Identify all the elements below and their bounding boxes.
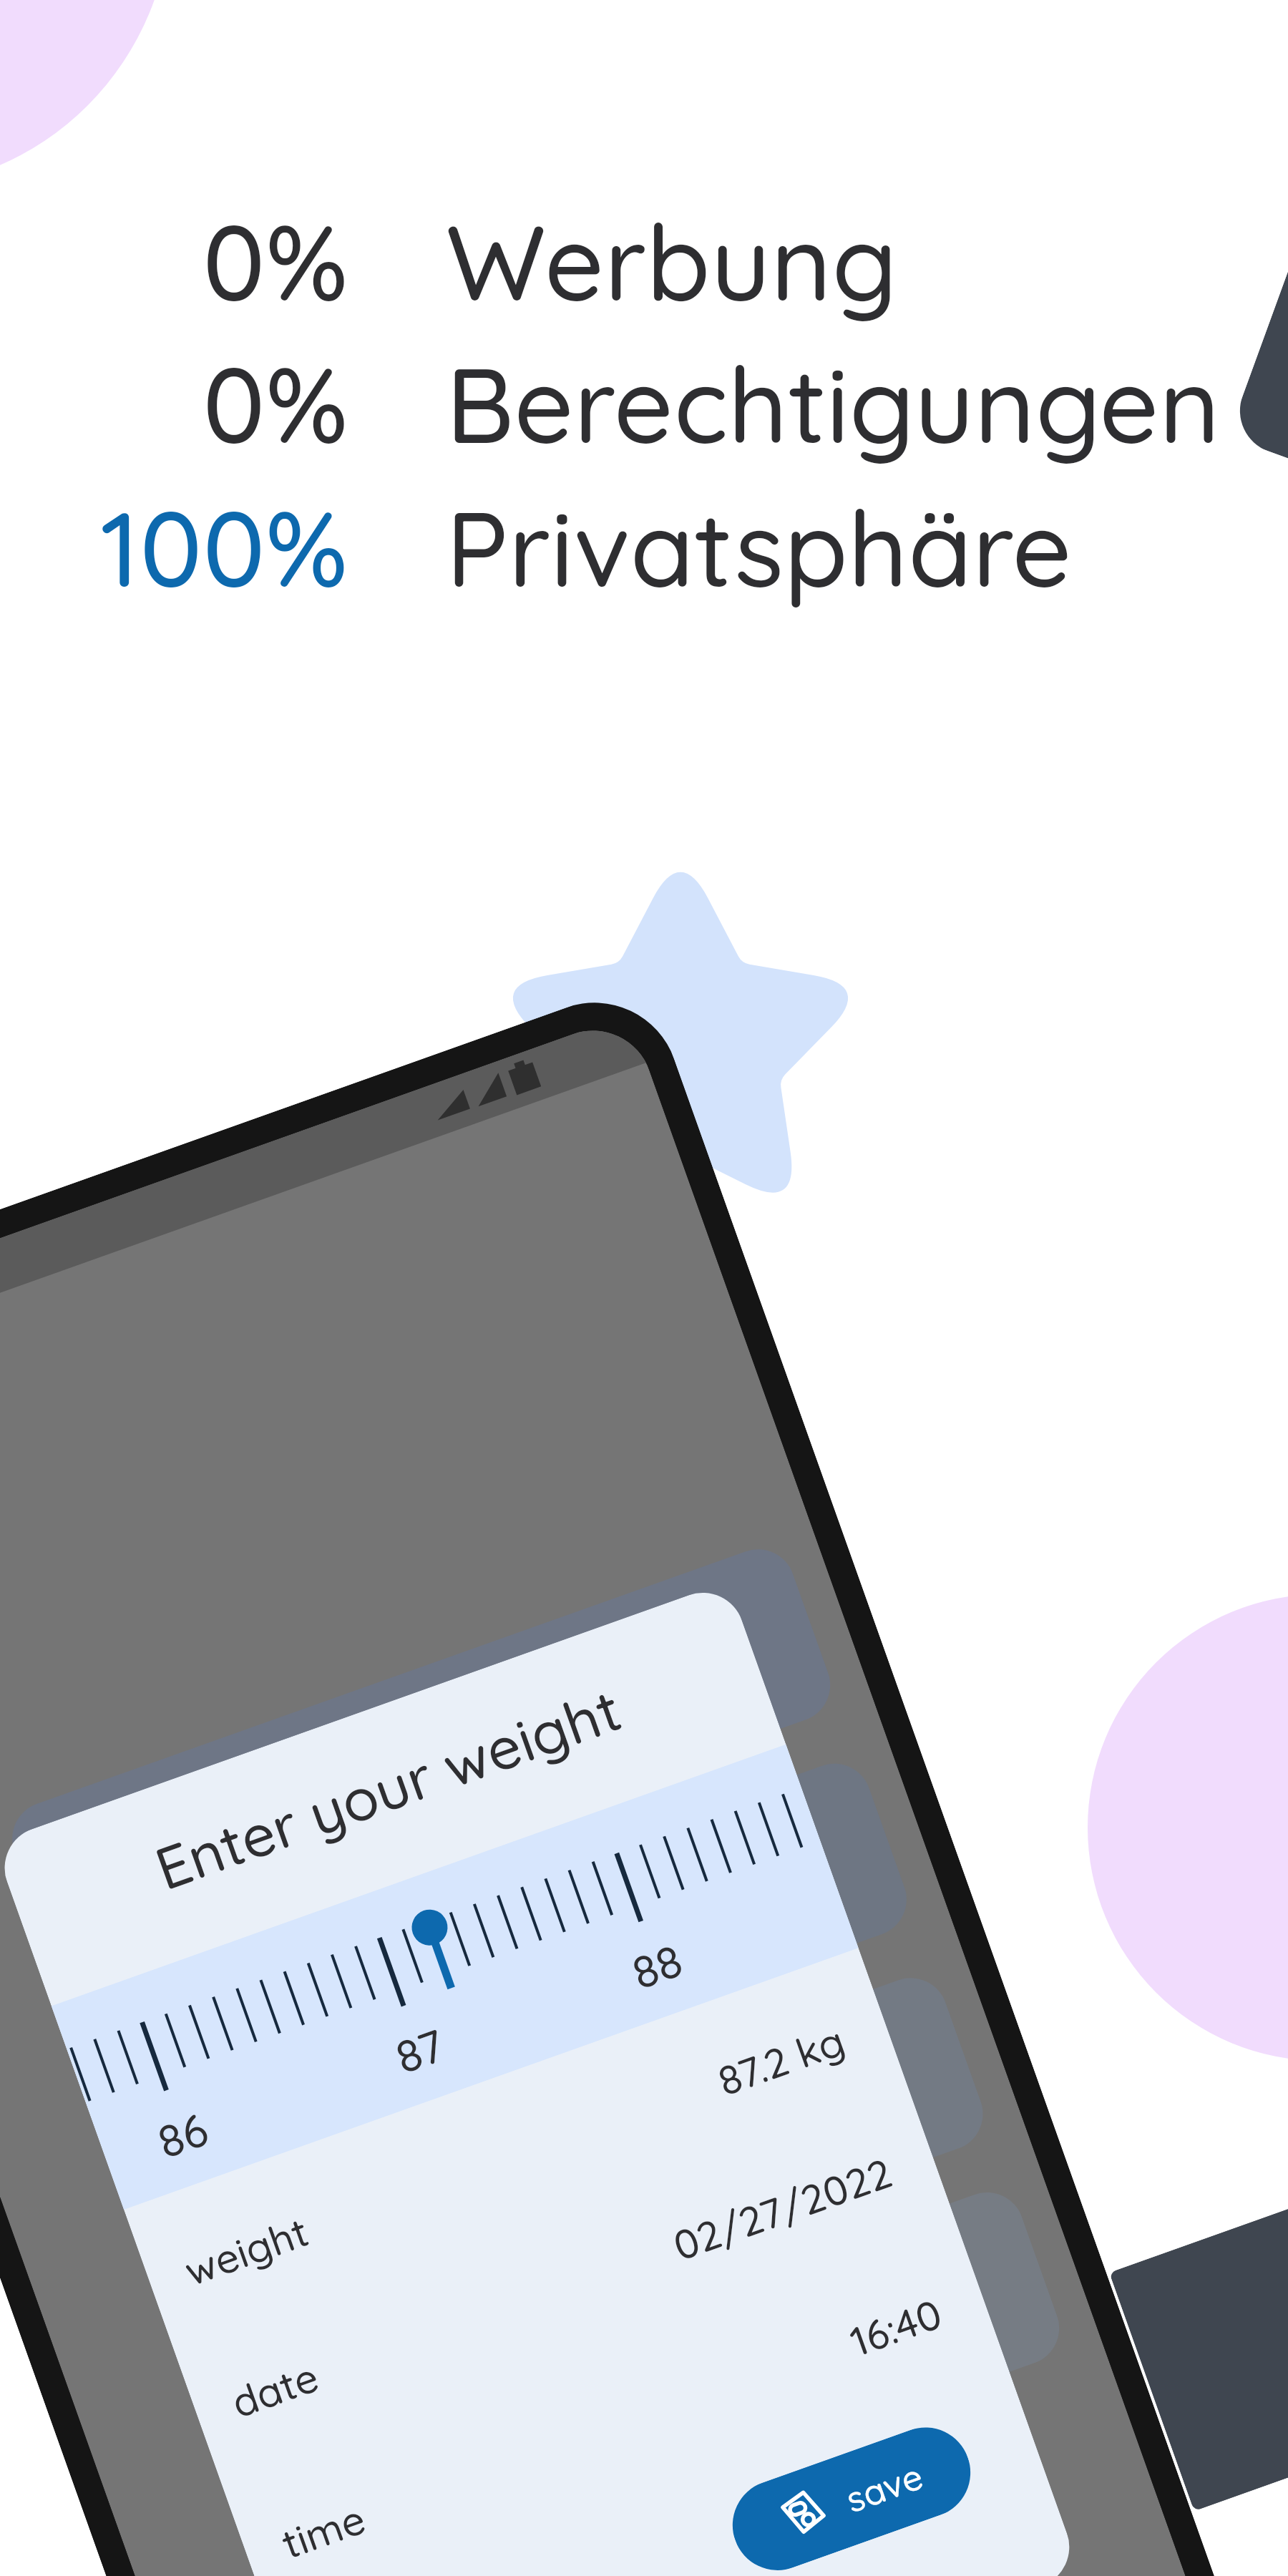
staticText: time (275, 2492, 372, 2569)
button[interactable]: save (720, 2415, 983, 2576)
staticText: save (840, 2453, 929, 2522)
staticText: 0% (203, 338, 348, 469)
staticText: 86 (150, 2100, 215, 2170)
staticText: Privatsphäre (446, 482, 1073, 613)
staticText: 16:40 (843, 2287, 949, 2367)
staticText: Berechtigungen (446, 338, 1221, 469)
staticText: 87.2 kg (711, 2014, 851, 2106)
staticText: 87 (388, 2016, 452, 2085)
staticText: 100% (100, 482, 348, 613)
staticText: 0% (203, 196, 348, 327)
staticText: Werbung (446, 196, 898, 327)
staticText: 88 (624, 1931, 690, 2001)
staticText: date (225, 2350, 325, 2428)
staticText: 02/27/2022 (666, 2146, 898, 2271)
staticText: Enter your weight (8, 1623, 768, 1954)
staticText: weight (178, 2205, 315, 2296)
